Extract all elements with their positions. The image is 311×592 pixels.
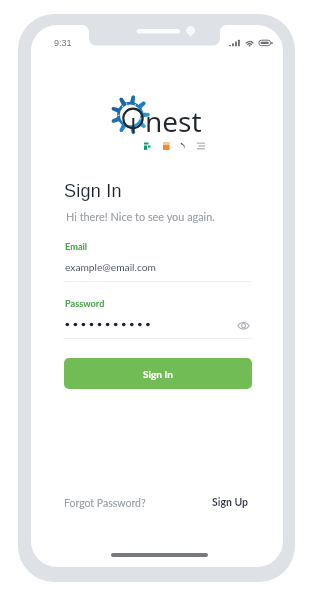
staticText: Hi there! Nice to see you again. (66, 210, 215, 223)
button[interactable]: Forgot Password? (64, 497, 146, 510)
staticText: Sign In (64, 181, 122, 201)
staticText: Password (65, 298, 105, 309)
staticText: nest (145, 102, 202, 140)
staticText: example@email.com (65, 261, 156, 273)
staticText: Email (65, 241, 88, 252)
staticText: Sign In (143, 368, 173, 380)
button[interactable]: Sign Up (212, 496, 249, 509)
staticText: Forgot Password? (64, 497, 146, 510)
staticText: 9:31 (54, 38, 72, 48)
button[interactable]: Sign In (64, 358, 252, 389)
button[interactable]: Show password (237, 319, 250, 332)
staticText: Sign Up (212, 496, 249, 509)
